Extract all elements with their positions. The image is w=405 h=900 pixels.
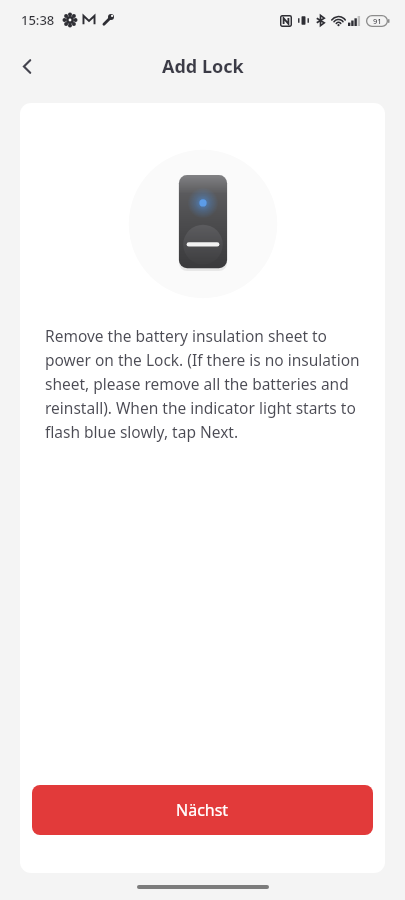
staticText: 91 [373, 16, 382, 26]
staticText: Nächst [176, 799, 229, 821]
staticText: 15:38 [21, 11, 55, 29]
button[interactable]: Nächst [32, 785, 373, 835]
staticText: Add Lock [162, 54, 244, 79]
staticText: Remove the battery insulation sheet to p… [45, 325, 360, 442]
button[interactable]: Back [5, 44, 49, 88]
